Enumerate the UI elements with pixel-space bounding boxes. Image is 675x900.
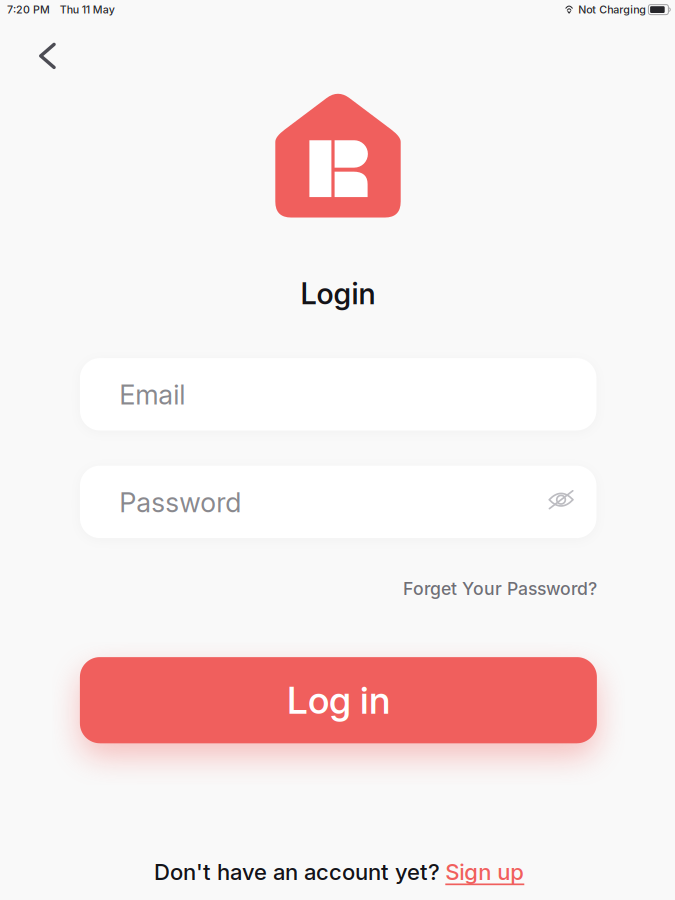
staticText: Thu 11 May — [60, 3, 115, 16]
button[interactable]: Forget Your Password? — [403, 578, 597, 599]
staticText: Not Charging — [578, 3, 646, 16]
staticText: Forget Your Password? — [403, 578, 597, 599]
button[interactable]: Back — [23, 32, 71, 80]
staticText: Email — [119, 378, 185, 411]
button[interactable]: Email — [80, 358, 596, 430]
staticText: Sign up — [445, 859, 524, 885]
button[interactable]: Log in — [80, 657, 597, 743]
staticText: 7:20 PM — [7, 3, 50, 16]
button[interactable]: Password — [80, 466, 596, 538]
staticText: Password — [119, 486, 241, 519]
button[interactable]: Sign up — [445, 859, 524, 885]
staticText: Login — [301, 276, 376, 311]
button[interactable]: Show password — [539, 478, 583, 522]
staticText: Don't have an account yet? — [154, 859, 440, 885]
staticText: Log in — [287, 678, 390, 723]
